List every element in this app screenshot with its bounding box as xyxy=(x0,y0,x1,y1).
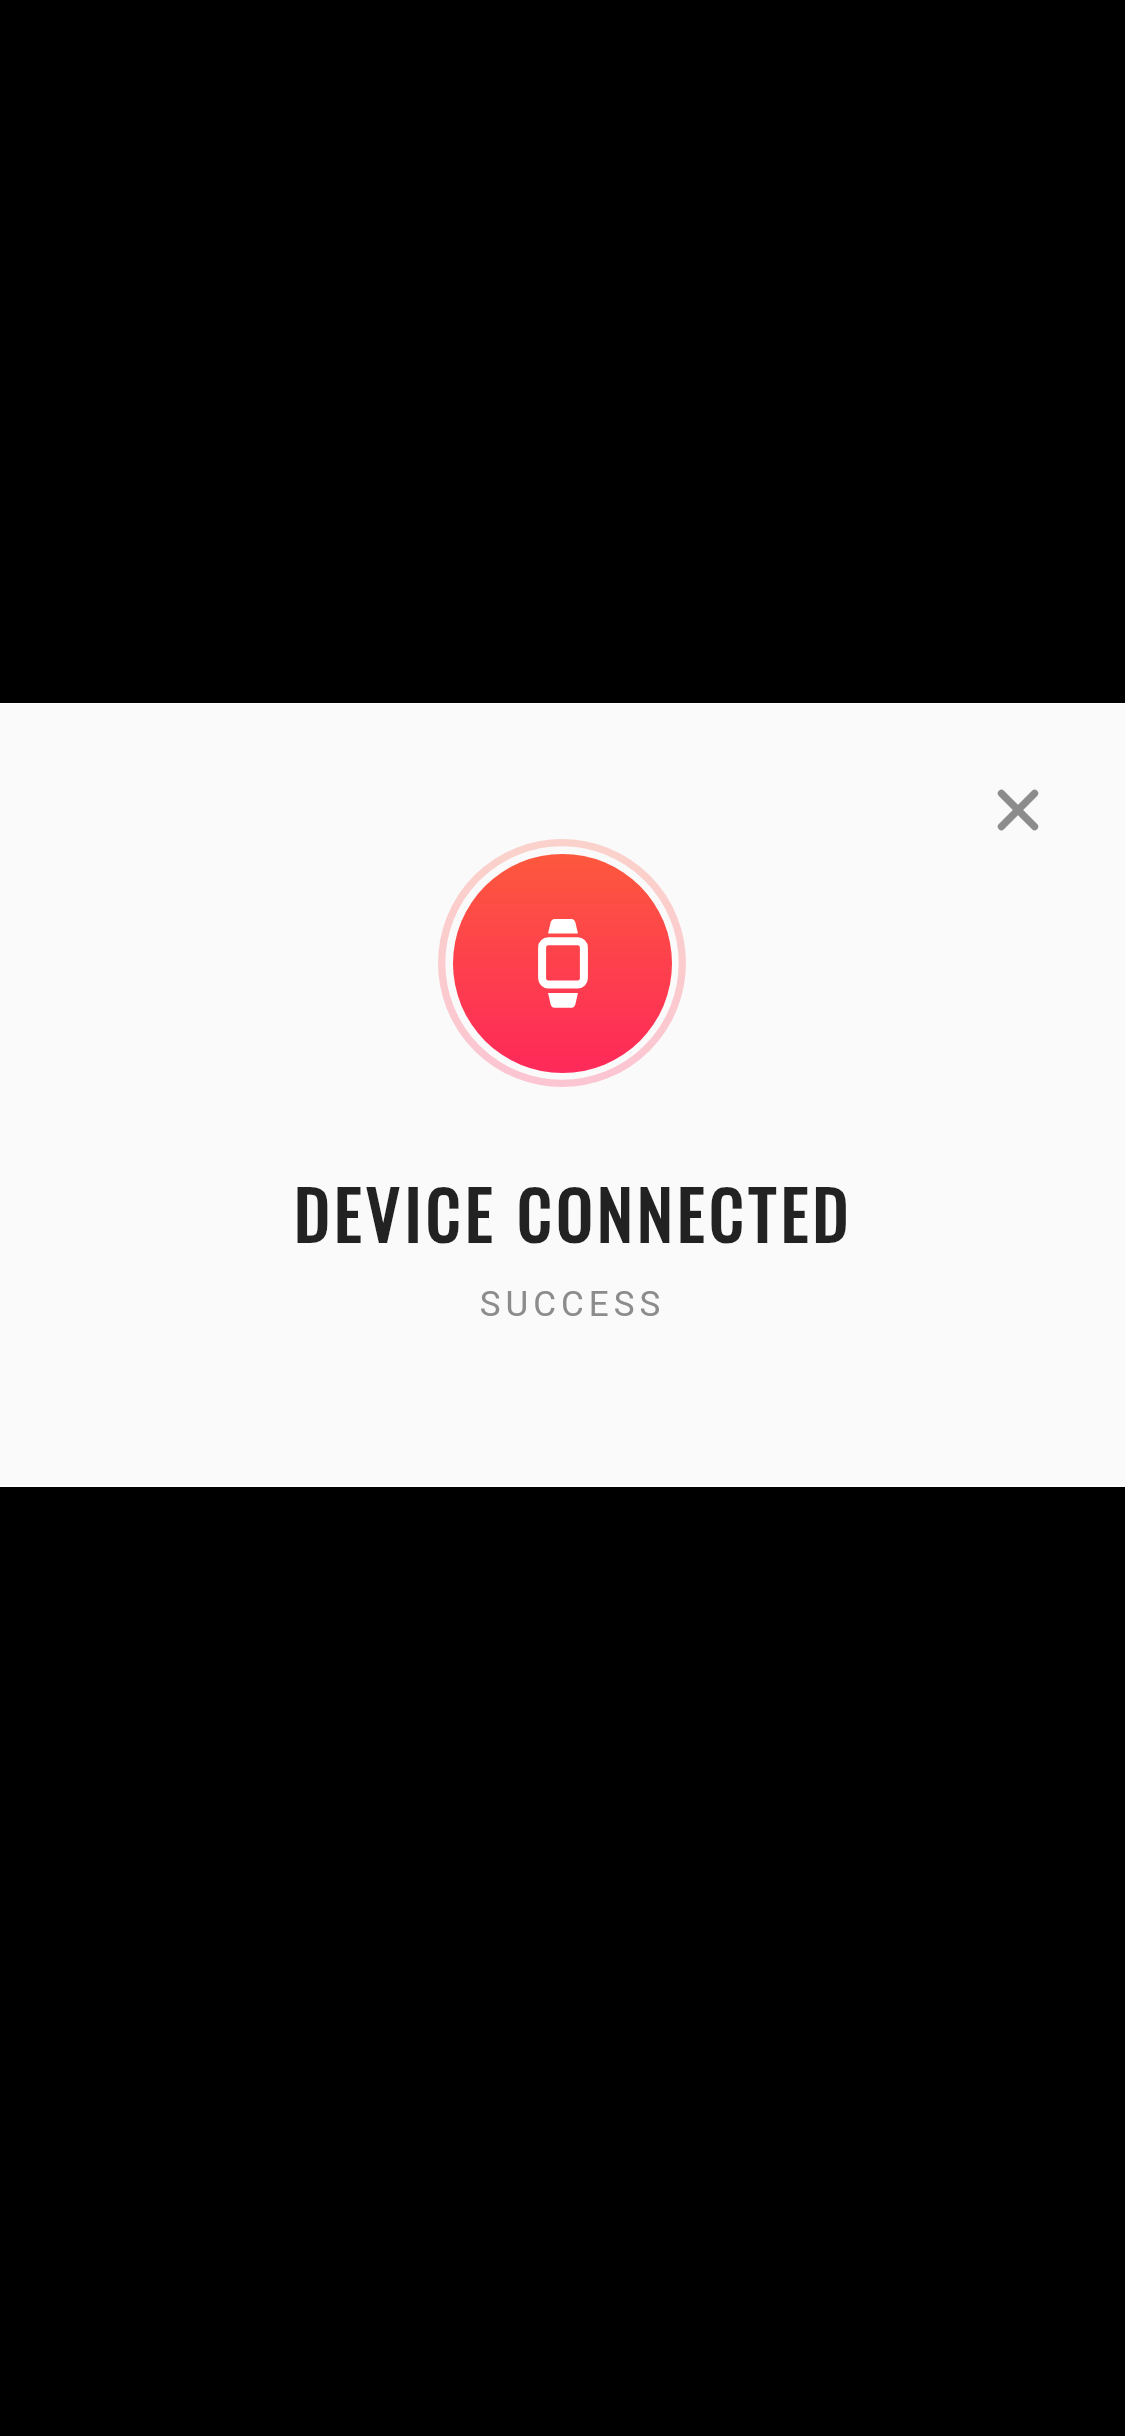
staticText: DEVICE CONNECTED xyxy=(11,1162,1125,1261)
other: Connected watch xyxy=(453,854,672,1073)
button[interactable]: Close xyxy=(964,756,1072,864)
staticText: SUCCESS xyxy=(10,1284,1125,1325)
